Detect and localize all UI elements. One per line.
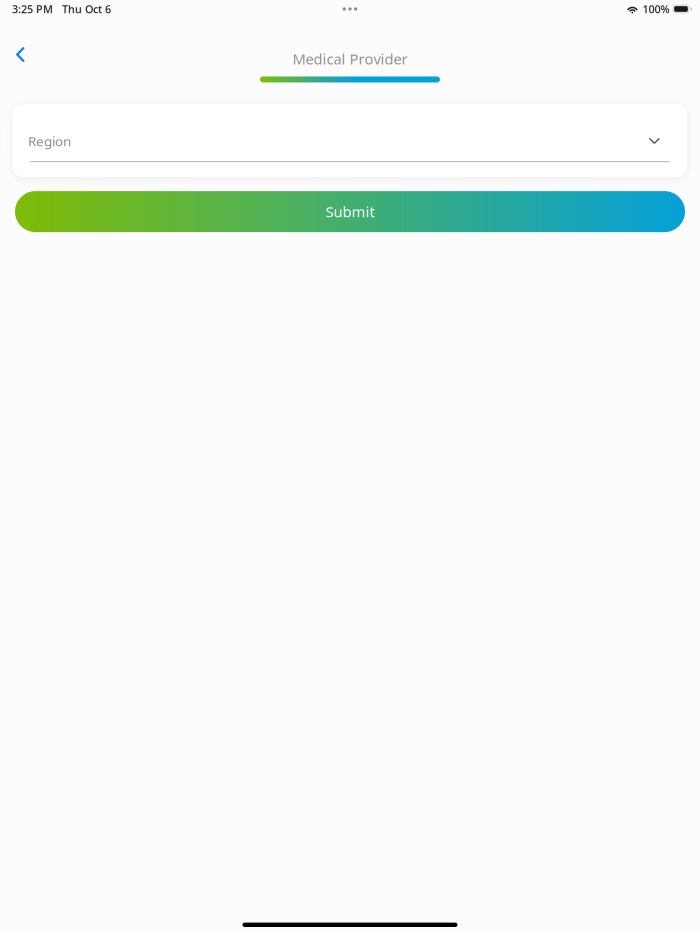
staticText: 100% [642, 2, 669, 16]
button[interactable]: Region [13, 104, 687, 177]
staticText: 3:25 PM [12, 2, 53, 16]
staticText: Submit [325, 202, 374, 221]
staticText: Thu Oct 6 [62, 2, 111, 16]
button[interactable]: Back [0, 16, 42, 72]
staticText: Region [28, 132, 71, 150]
button[interactable]: Submit [15, 191, 685, 232]
staticText: Medical Provider [292, 49, 407, 68]
